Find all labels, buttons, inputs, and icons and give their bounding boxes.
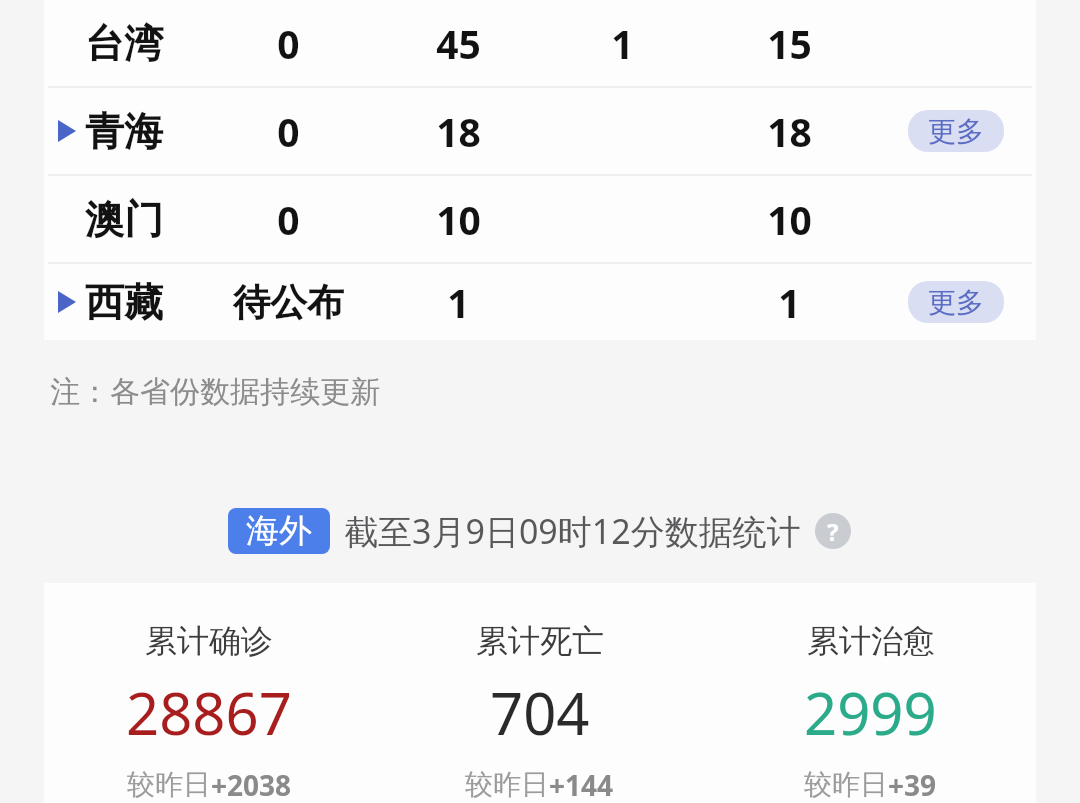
staticText: 10	[436, 193, 481, 246]
button[interactable]: 累计治愈	[705, 583, 1036, 803]
staticText: 更多	[928, 114, 984, 149]
staticText: +2038	[211, 766, 292, 803]
staticText: 1	[447, 276, 470, 329]
staticText: 澳门	[85, 195, 163, 244]
button[interactable]: 西藏	[44, 264, 1036, 340]
staticText: 18	[436, 105, 481, 158]
staticText: 较昨日	[804, 767, 888, 802]
staticText: 15	[767, 17, 812, 70]
staticText: 1	[611, 17, 634, 70]
staticText: 青海	[85, 107, 163, 156]
staticText: +39	[888, 766, 937, 803]
button[interactable]: 台湾	[44, 0, 1036, 86]
staticText: 海外	[246, 510, 312, 552]
staticText: 更多	[928, 285, 984, 320]
button[interactable]: 青海	[44, 88, 1036, 174]
staticText: 1	[778, 276, 801, 329]
button[interactable]: 累计死亡	[374, 583, 705, 803]
staticText: 704	[490, 673, 590, 752]
button[interactable]: Help	[815, 513, 851, 549]
staticText: 0	[277, 193, 300, 246]
staticText: 较昨日	[127, 767, 211, 802]
button[interactable]: 更多	[908, 281, 1004, 323]
staticText: 待公布	[233, 279, 344, 326]
staticText: 10	[767, 193, 812, 246]
staticText: 台湾	[85, 19, 163, 68]
staticText: 28867	[126, 673, 292, 752]
staticText: ?	[827, 515, 839, 548]
staticText: 截至3月9日09时12分数据统计	[344, 508, 801, 554]
staticText: 较昨日	[465, 767, 549, 802]
staticText: 累计死亡	[476, 621, 604, 661]
staticText: 注：各省份数据持续更新	[50, 373, 380, 411]
button[interactable]: 澳门	[44, 176, 1036, 262]
staticText: 累计确诊	[145, 621, 273, 661]
staticText: +144	[549, 766, 614, 803]
button[interactable]: 累计确诊	[44, 583, 374, 803]
button[interactable]: 海外	[228, 508, 330, 554]
staticText: 0	[277, 105, 300, 158]
staticText: 0	[277, 17, 300, 70]
staticText: 西藏	[85, 278, 163, 327]
staticText: 18	[767, 105, 812, 158]
staticText: 累计治愈	[807, 621, 935, 661]
staticText: 45	[436, 17, 481, 70]
staticText: 2999	[804, 673, 937, 752]
button[interactable]: 更多	[908, 110, 1004, 152]
